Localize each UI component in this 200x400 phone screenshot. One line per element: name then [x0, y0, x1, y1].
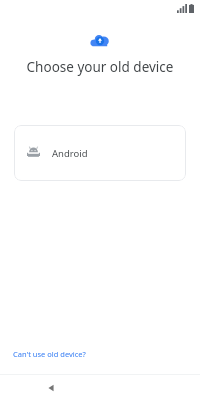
staticText: Android: [52, 147, 88, 160]
button[interactable]: Android: [14, 125, 186, 181]
button[interactable]: Back: [40, 377, 62, 399]
staticText: Can't use old device?: [13, 349, 86, 359]
staticText: Choose your old device: [12, 58, 188, 76]
button[interactable]: Can't use old device?: [12, 346, 87, 362]
